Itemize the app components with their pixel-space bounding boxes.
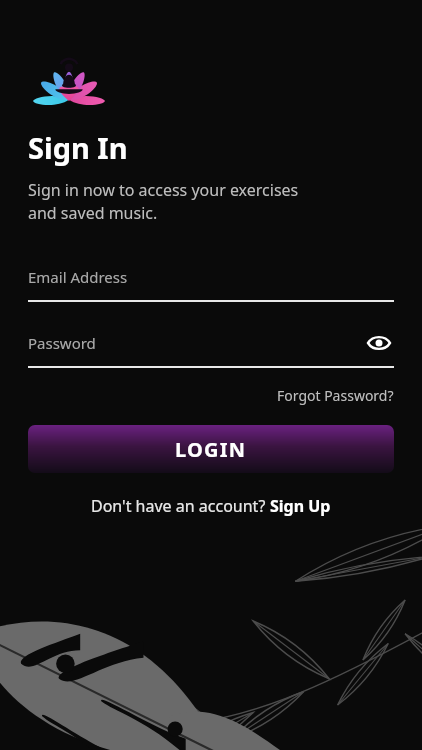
button[interactable]: Email Address <box>28 260 394 302</box>
staticText: Sign in now to access your exercises and… <box>28 179 299 224</box>
staticText: Password <box>28 333 96 353</box>
button[interactable]: Don't have an account? <box>28 495 394 517</box>
staticText: Forgot Password? <box>277 386 394 405</box>
staticText: LOGIN <box>175 436 247 463</box>
staticText: Email Address <box>28 267 128 287</box>
staticText: Sign In <box>28 128 128 167</box>
button[interactable]: Password <box>28 326 394 368</box>
staticText: Sign Up <box>270 495 331 517</box>
button[interactable]: Forgot Password? <box>277 382 394 409</box>
button[interactable]: Show password <box>364 328 394 358</box>
button[interactable]: LOGIN <box>28 425 394 473</box>
staticText: Don't have an account? <box>91 495 270 517</box>
